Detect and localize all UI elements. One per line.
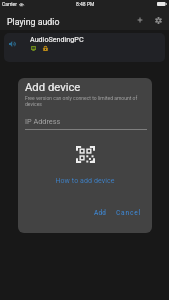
staticText: Add device [25,81,81,94]
staticText: Carrier [2,1,17,7]
staticText: Playing audio [7,17,60,27]
button[interactable]: Add device [130,10,149,30]
staticText: Cancel [116,209,141,217]
staticText: IP Address [25,117,61,126]
button[interactable]: Settings [149,10,168,30]
staticText: How to add device [55,177,115,185]
button[interactable]: AudioSendingPC [4,33,165,62]
button[interactable]: How to add device [53,175,117,187]
button[interactable]: Add [91,207,110,219]
button[interactable]: Cancel [113,207,144,219]
staticText: Free version can only connect to limited… [25,95,146,108]
staticText: 8:48 PM [76,1,95,7]
button[interactable]: Scan QR code [73,142,97,166]
staticText: AudioSendingPC [30,35,84,43]
staticText: Add [94,209,107,217]
